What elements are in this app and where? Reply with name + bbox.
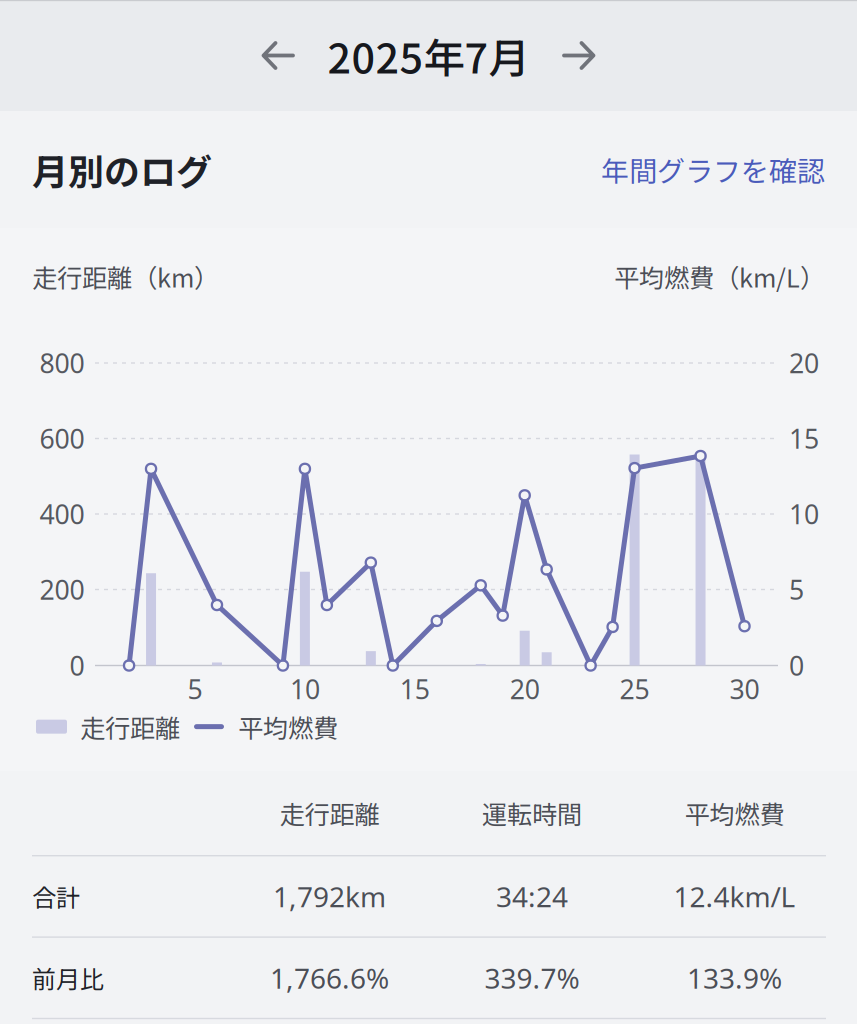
staticText: 133.9% xyxy=(687,959,782,996)
staticText: 2025年7月 xyxy=(327,26,529,85)
button[interactable]: Previous month xyxy=(239,19,308,91)
staticText: 平均燃費（km/L） xyxy=(614,258,825,295)
staticText: 20 xyxy=(789,345,819,381)
staticText: 15 xyxy=(789,421,819,456)
staticText: 339.7% xyxy=(484,959,579,996)
staticText: 走行距離（km） xyxy=(32,258,219,295)
staticText: 合計 xyxy=(32,879,80,914)
staticText: 200 xyxy=(39,572,84,607)
staticText: 10 xyxy=(290,671,320,707)
staticText: 5 xyxy=(187,671,202,707)
button[interactable]: 年間グラフを確認 xyxy=(601,149,825,190)
staticText: 1,792km xyxy=(273,878,386,915)
staticText: 5 xyxy=(789,572,804,607)
staticText: 運転時間 xyxy=(482,795,582,831)
staticText: 15 xyxy=(400,671,430,707)
staticText: 0 xyxy=(789,648,804,683)
staticText: 12.4km/L xyxy=(673,878,795,915)
staticText: 月別のログ xyxy=(32,143,212,195)
staticText: 600 xyxy=(39,421,84,456)
staticText: 400 xyxy=(39,496,84,532)
staticText: 10 xyxy=(789,496,819,532)
staticText: 前月比 xyxy=(32,960,104,995)
staticText: 走行距離 xyxy=(279,795,379,831)
staticText: 1,766.6% xyxy=(270,959,389,996)
staticText: 平均燃費 xyxy=(238,708,338,745)
staticText: 800 xyxy=(39,345,84,381)
staticText: 0 xyxy=(69,648,84,683)
staticText: 34:24 xyxy=(496,878,568,915)
button[interactable]: Next month xyxy=(548,19,617,91)
staticText: 年間グラフを確認 xyxy=(601,149,825,190)
staticText: 平均燃費 xyxy=(684,795,784,831)
staticText: 走行距離 xyxy=(80,708,180,745)
staticText: 30 xyxy=(729,671,759,707)
staticText: 20 xyxy=(510,671,540,707)
staticText: 25 xyxy=(620,671,650,707)
